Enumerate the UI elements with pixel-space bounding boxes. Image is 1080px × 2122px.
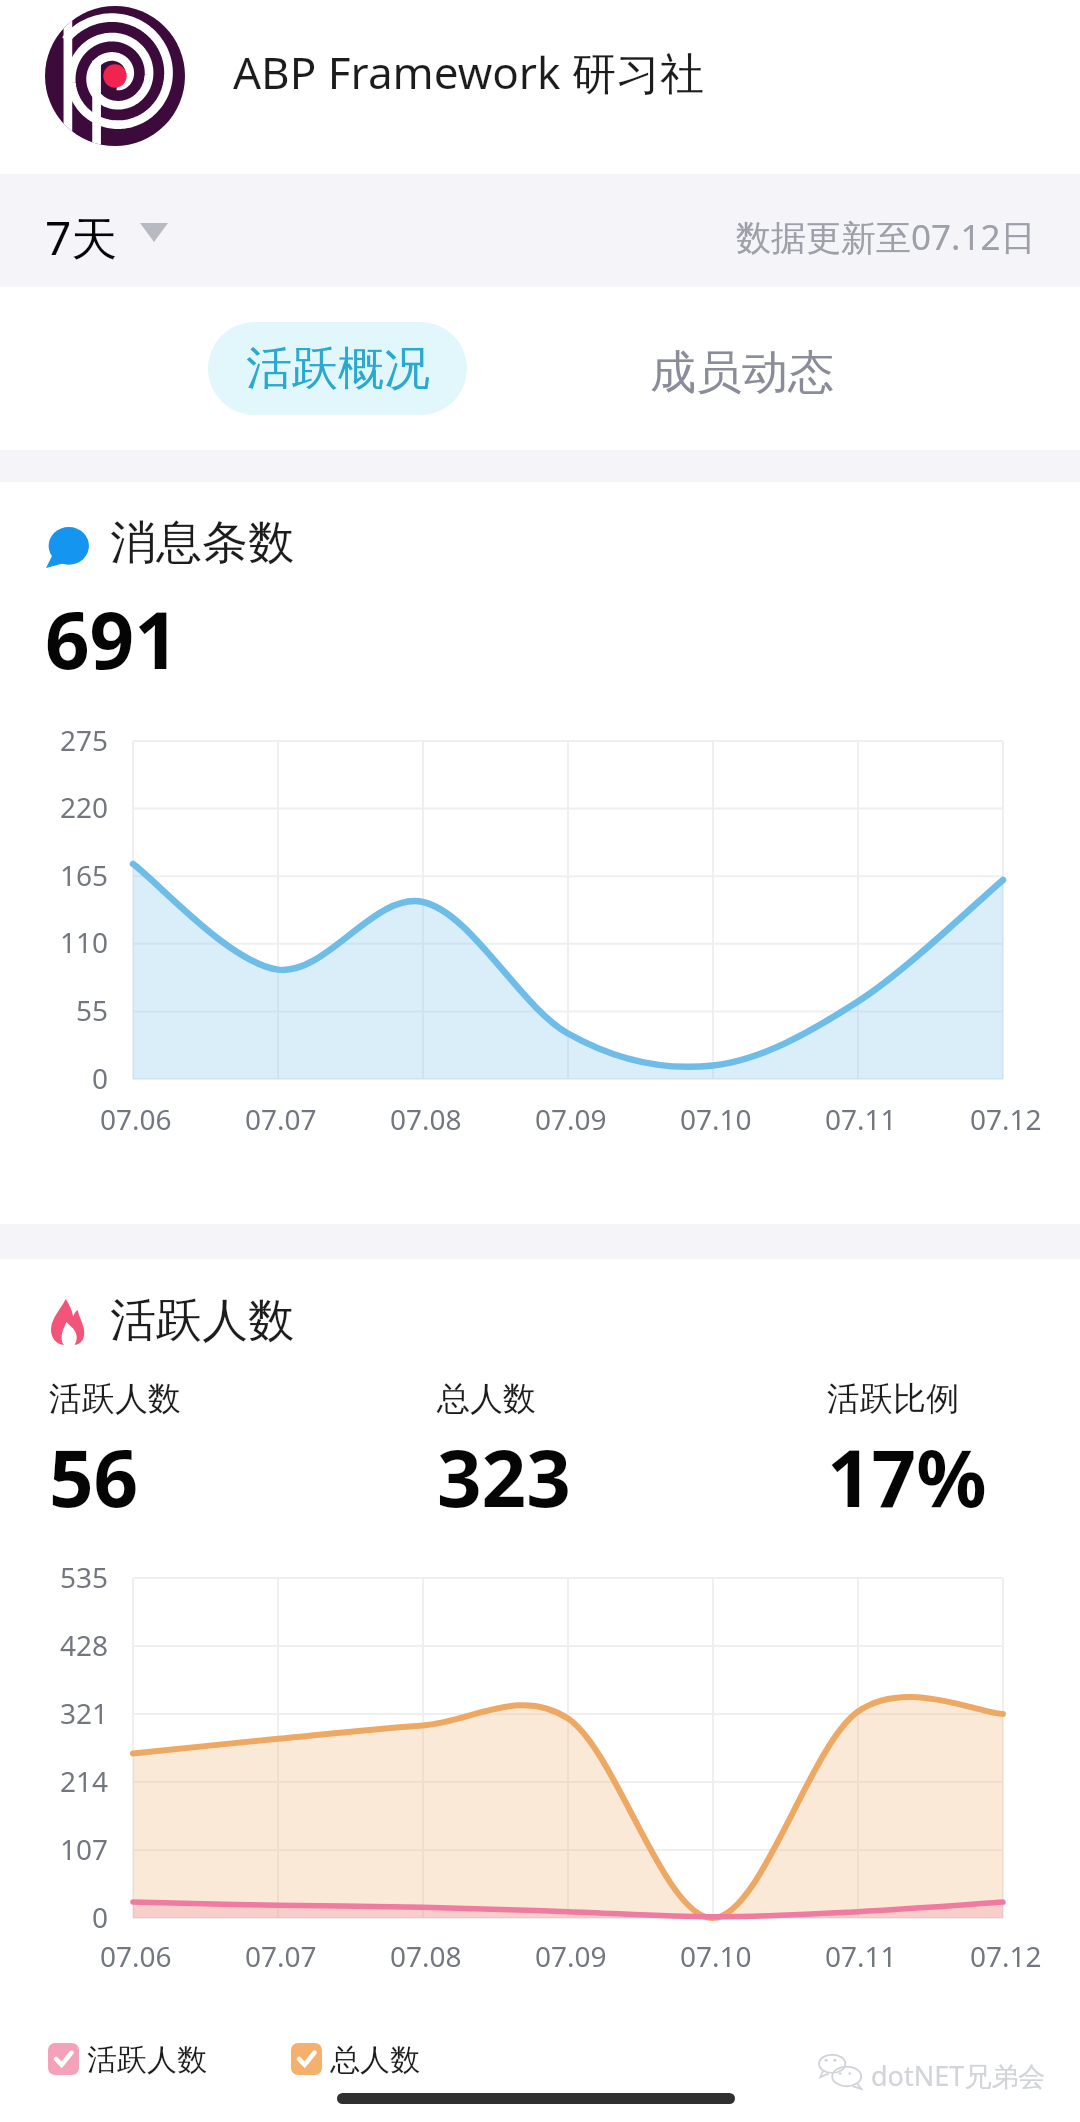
staticText: 07.11: [825, 1100, 897, 1138]
staticText: 07.06: [100, 1937, 172, 1975]
staticText: 55: [76, 991, 109, 1029]
staticText: 0: [92, 1898, 109, 1936]
staticText: 总人数: [437, 1378, 536, 1420]
staticText: 数据更新至07.12日: [736, 213, 1036, 261]
staticText: 总人数: [330, 2041, 420, 2079]
staticText: 428: [60, 1626, 109, 1664]
staticText: 323: [437, 1424, 571, 1530]
staticText: dotNET兄弟会: [871, 2057, 1046, 2094]
staticText: 110: [60, 923, 109, 961]
button[interactable]: 7天: [40, 196, 180, 274]
staticText: 165: [60, 856, 109, 894]
staticText: 07.11: [825, 1937, 897, 1975]
staticText: 07.10: [680, 1937, 752, 1975]
staticText: 活跃概况: [246, 340, 430, 398]
staticText: 0: [92, 1059, 109, 1097]
button[interactable]: ABP Framework group avatar: [20, 0, 740, 174]
staticText: 107: [60, 1830, 109, 1868]
staticText: 220: [60, 788, 109, 826]
staticText: 07.08: [390, 1100, 462, 1138]
staticText: 321: [60, 1694, 109, 1732]
staticText: 07.09: [535, 1100, 607, 1138]
staticText: 07.09: [535, 1937, 607, 1975]
staticText: 活跃人数: [110, 1292, 294, 1350]
button[interactable]: 活跃人数: [48, 2033, 217, 2085]
staticText: 535: [60, 1558, 109, 1596]
staticText: 活跃人数: [87, 2041, 207, 2079]
staticText: 275: [60, 721, 109, 759]
staticText: 活跃比例: [827, 1378, 959, 1420]
button[interactable]: 活跃概况: [208, 322, 467, 415]
staticText: 07.10: [680, 1100, 752, 1138]
staticText: 214: [60, 1762, 109, 1800]
staticText: 07.12: [970, 1100, 1042, 1138]
staticText: 07.06: [100, 1100, 172, 1138]
button[interactable]: 成员动态: [617, 326, 867, 419]
staticText: 17%: [827, 1424, 987, 1530]
staticText: 07.07: [245, 1937, 317, 1975]
staticText: ABP Framework 研习社: [233, 42, 704, 102]
other: Change date range: [140, 223, 168, 242]
staticText: 成员动态: [650, 344, 834, 402]
staticText: 7天: [45, 206, 118, 269]
staticText: 07.07: [245, 1100, 317, 1138]
staticText: 活跃人数: [49, 1378, 181, 1420]
staticText: 07.12: [970, 1937, 1042, 1975]
staticText: 56: [49, 1424, 139, 1530]
button[interactable]: 总人数: [291, 2033, 460, 2085]
staticText: 07.08: [390, 1937, 462, 1975]
staticText: 691: [45, 586, 179, 692]
other: ABP Framework group avatar: [45, 6, 185, 146]
staticText: 消息条数: [110, 514, 294, 572]
